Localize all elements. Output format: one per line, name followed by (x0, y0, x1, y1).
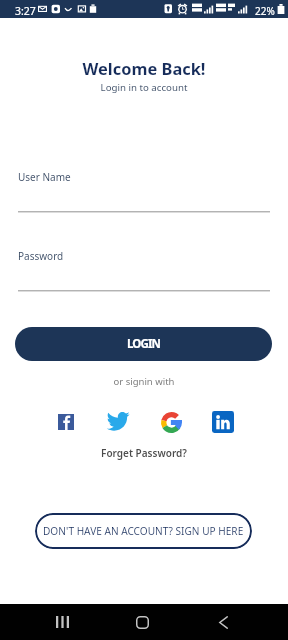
staticText: 3:27 (15, 4, 36, 18)
button[interactable]: Sign in with Twitter (105, 408, 131, 434)
button[interactable]: Recent apps (42, 606, 82, 638)
staticText: Password (18, 249, 64, 263)
staticText: 22% (255, 4, 275, 18)
button[interactable]: Sign in with Google (158, 409, 184, 435)
staticText: LOGIN (127, 336, 160, 352)
staticText: Forget Password? (101, 446, 187, 460)
staticText: DON'T HAVE AN ACCOUNT? SIGN UP HERE (43, 524, 244, 538)
button[interactable]: Back (203, 606, 243, 638)
button[interactable]: Sign in with Facebook (53, 409, 79, 435)
staticText: Login in to account (0, 81, 288, 94)
button[interactable]: Forget Password? (94, 444, 194, 462)
button[interactable]: Sign in with LinkedIn (210, 409, 236, 435)
button[interactable]: Home (122, 606, 162, 638)
button[interactable]: LOGIN (15, 327, 272, 361)
button[interactable]: DON'T HAVE AN ACCOUNT? SIGN UP HERE (35, 513, 252, 549)
staticText: User Name (18, 170, 71, 184)
staticText: Welcome Back! (0, 57, 288, 79)
staticText: or signin with (0, 375, 288, 388)
